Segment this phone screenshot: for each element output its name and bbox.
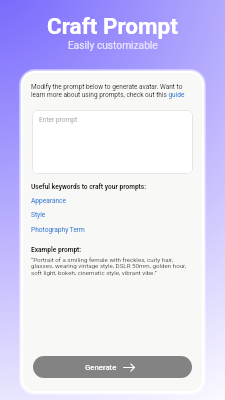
staticText: Craft Prompt (47, 13, 178, 39)
button[interactable]: Generate (33, 356, 192, 378)
staticText: “Portrait of a smiling female with freck… (31, 256, 196, 277)
staticText: Enter prompt (39, 116, 78, 124)
button[interactable]: Enter prompt (32, 110, 193, 174)
staticText: Easily customizable (68, 40, 158, 52)
staticText: Useful keywords to craft your prompts: (31, 183, 147, 191)
button[interactable]: Style (31, 211, 46, 219)
button[interactable]: Appearance (31, 197, 67, 205)
staticText: Example prompt: (31, 246, 82, 254)
button[interactable]: Photography Term (31, 226, 85, 234)
staticText: Generate (85, 363, 117, 372)
staticText: Modify the prompt below to generate avat… (31, 83, 187, 99)
